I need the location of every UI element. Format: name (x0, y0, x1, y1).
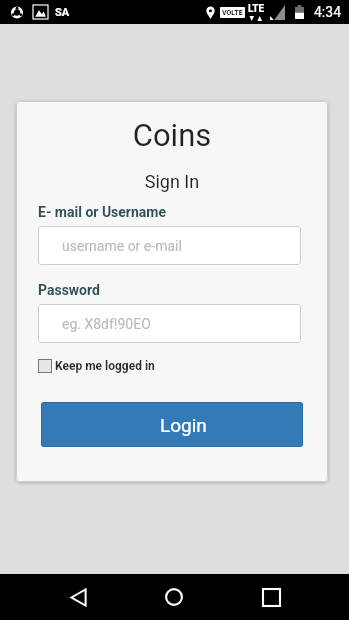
staticText: Sign In (16, 171, 328, 192)
button[interactable]: Home (154, 577, 194, 617)
button[interactable]: username or e-mail (38, 226, 301, 265)
staticText: Coins (16, 117, 328, 153)
button[interactable]: Recent apps (251, 577, 291, 617)
staticText: Keep me logged in (55, 359, 155, 373)
staticText: VOLTE (222, 9, 243, 17)
staticText: eg. X8df!90EO (62, 316, 151, 332)
staticText: LTE (248, 3, 265, 15)
button[interactable]: Login (41, 402, 303, 447)
staticText: E- mail or Username (38, 204, 167, 220)
button[interactable]: Keep me logged in (38, 359, 155, 373)
staticText: username or e-mail (62, 238, 182, 254)
staticText: SA (55, 6, 70, 19)
button[interactable]: eg. X8df!90EO (38, 304, 301, 343)
staticText: 4:34 (314, 4, 341, 20)
staticText: Password (38, 282, 100, 298)
button[interactable]: Back (58, 577, 98, 617)
staticText: Login (160, 414, 207, 436)
